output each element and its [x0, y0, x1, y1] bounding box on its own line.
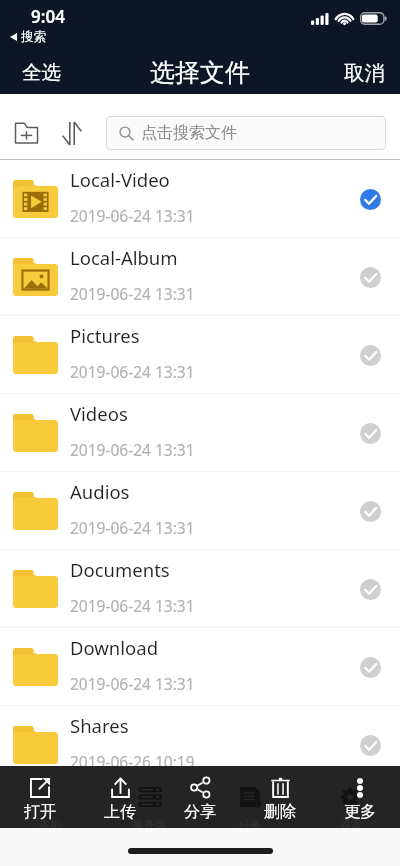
button[interactable]: Select Pictures: [356, 341, 384, 369]
staticText: 上传: [104, 802, 136, 822]
staticText: 9:04: [31, 5, 65, 28]
button[interactable]: Select Audios: [356, 497, 384, 525]
button[interactable]: Documents: [0, 550, 400, 628]
staticText: 更多: [344, 802, 376, 822]
staticText: Shares: [70, 713, 129, 738]
staticText: 2019-06-24 13:31: [70, 673, 195, 694]
button[interactable]: Select Local-Video: [356, 185, 384, 213]
button[interactable]: Select Download: [356, 653, 384, 681]
button[interactable]: Sort: [52, 113, 92, 153]
staticText: 2019-06-24 13:31: [70, 283, 195, 304]
button[interactable]: 全选: [0, 49, 77, 96]
staticText: 设置: [340, 817, 362, 831]
staticText: 2019-06-24 13:31: [70, 439, 195, 460]
staticText: 2019-06-24 13:31: [70, 595, 195, 616]
staticText: Audios: [70, 479, 130, 504]
staticText: 2019-06-24 13:31: [70, 205, 195, 226]
button[interactable]: New folder: [6, 113, 46, 153]
staticText: Pictures: [70, 323, 140, 348]
button[interactable]: Videos: [0, 394, 400, 472]
staticText: Videos: [70, 401, 128, 426]
button[interactable]: Local-Video: [0, 160, 400, 238]
button[interactable]: Pictures: [0, 316, 400, 394]
button[interactable]: 更多: [320, 766, 400, 828]
button[interactable]: Download: [0, 628, 400, 706]
staticText: 取消: [344, 60, 385, 86]
staticText: Local-Album: [70, 245, 178, 270]
staticText: 搜索: [21, 29, 46, 45]
button[interactable]: Select Videos: [356, 419, 384, 447]
staticText: 删除: [264, 802, 296, 822]
button[interactable]: 取消: [328, 49, 400, 96]
button[interactable]: 上传: [80, 766, 160, 828]
button[interactable]: 点击搜索文件: [106, 116, 386, 150]
staticText: Download: [70, 635, 159, 660]
staticText: 点击搜索文件: [141, 123, 237, 143]
staticText: 任务: [239, 817, 261, 831]
staticText: 选择文件: [150, 57, 250, 88]
staticText: 服务器: [133, 817, 166, 831]
staticText: 2019-06-26 10:19: [70, 751, 195, 772]
staticText: 打开: [24, 802, 56, 822]
button[interactable]: 打开: [0, 766, 80, 828]
staticText: 2019-06-24 13:31: [70, 517, 195, 538]
button[interactable]: Local-Album: [0, 238, 400, 316]
staticText: Local-Video: [70, 167, 170, 192]
button[interactable]: Select Documents: [356, 575, 384, 603]
button[interactable]: Select Local-Album: [356, 263, 384, 291]
button[interactable]: Audios: [0, 472, 400, 550]
button[interactable]: Shares: [0, 706, 400, 784]
button[interactable]: 删除: [240, 766, 320, 828]
staticText: 全选: [22, 60, 61, 85]
staticText: 本机: [39, 817, 61, 831]
staticText: 分享: [184, 802, 216, 822]
staticText: Documents: [70, 557, 170, 582]
button[interactable]: 分享: [160, 766, 240, 828]
staticText: 2019-06-24 13:31: [70, 361, 195, 382]
button[interactable]: Select Shares: [356, 731, 384, 759]
